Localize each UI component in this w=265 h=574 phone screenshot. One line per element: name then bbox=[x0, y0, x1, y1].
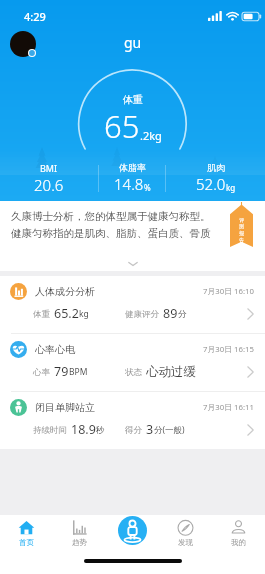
staticText: 体脂率 bbox=[119, 162, 146, 173]
staticText: 发现 bbox=[178, 538, 193, 547]
staticText: kg bbox=[226, 182, 236, 193]
staticText: 52.0 bbox=[196, 174, 226, 194]
staticText: 秒 bbox=[96, 425, 105, 436]
button[interactable]: 人体成分分析 bbox=[0, 276, 265, 333]
staticText: 79 bbox=[54, 363, 69, 380]
staticText: 评测报告 bbox=[238, 217, 245, 243]
staticText: 89 bbox=[163, 305, 178, 322]
staticText: kg bbox=[79, 308, 89, 320]
staticText: BMI bbox=[40, 162, 58, 174]
button[interactable]: 趋势 bbox=[53, 519, 106, 559]
button[interactable]: BMI bbox=[0, 162, 98, 194]
button[interactable]: 心率心电 bbox=[0, 334, 265, 391]
staticText: 4:29 bbox=[24, 9, 46, 24]
button[interactable]: 展开 bbox=[126, 260, 140, 268]
staticText: 7月30日 16:11 bbox=[203, 402, 254, 413]
button[interactable]: 发现 bbox=[159, 519, 212, 559]
button[interactable]: Measure bbox=[118, 516, 147, 545]
staticText: gu bbox=[124, 33, 142, 52]
staticText: 心动过缓 bbox=[146, 364, 196, 380]
staticText: 20.6 bbox=[34, 175, 64, 194]
staticText: 闭目单脚站立 bbox=[35, 401, 95, 414]
staticText: 14.8 bbox=[114, 174, 144, 194]
staticText: 体重 bbox=[123, 93, 143, 106]
staticText: 持续时间 bbox=[33, 425, 67, 436]
staticText: 65 bbox=[104, 105, 140, 147]
staticText: 分(一般) bbox=[154, 424, 185, 436]
staticText: 肌肉 bbox=[207, 162, 225, 173]
staticText: 健康评分 bbox=[125, 309, 159, 320]
staticText: % bbox=[144, 182, 151, 193]
staticText: 7月30日 16:10 bbox=[203, 286, 254, 297]
staticText: 65.2 bbox=[54, 305, 79, 322]
staticText: 18.9 bbox=[71, 421, 96, 438]
staticText: 得分 bbox=[125, 425, 142, 436]
button[interactable]: 肌肉 bbox=[166, 162, 265, 194]
staticText: 3 bbox=[146, 421, 154, 438]
staticText: 体重 bbox=[33, 309, 50, 320]
staticText: .2kg bbox=[140, 128, 162, 143]
staticText: BPM bbox=[69, 366, 88, 378]
button[interactable]: 评测报告 bbox=[230, 201, 253, 247]
staticText: 状态 bbox=[125, 367, 142, 378]
staticText: 分 bbox=[178, 309, 187, 320]
staticText: 健康匀称指的是肌肉、脂肪、蛋白质、骨质 bbox=[11, 227, 211, 240]
button[interactable]: 我的 bbox=[212, 519, 265, 559]
staticText: 7月30日 16:15 bbox=[203, 344, 254, 355]
button[interactable]: 体脂率 bbox=[99, 162, 165, 194]
staticText: 久康博士分析，您的体型属于健康匀称型。 bbox=[11, 210, 211, 223]
staticText: 心率 bbox=[33, 367, 50, 378]
button[interactable]: 闭目单脚站立 bbox=[0, 392, 265, 449]
staticText: 首页 bbox=[19, 538, 34, 547]
staticText: 人体成分分析 bbox=[35, 285, 95, 298]
button[interactable]: 首页 bbox=[0, 519, 53, 559]
button[interactable]: Profile bbox=[10, 31, 36, 57]
staticText: 我的 bbox=[231, 538, 246, 547]
staticText: 趋势 bbox=[72, 538, 87, 547]
staticText: 心率心电 bbox=[35, 343, 75, 356]
